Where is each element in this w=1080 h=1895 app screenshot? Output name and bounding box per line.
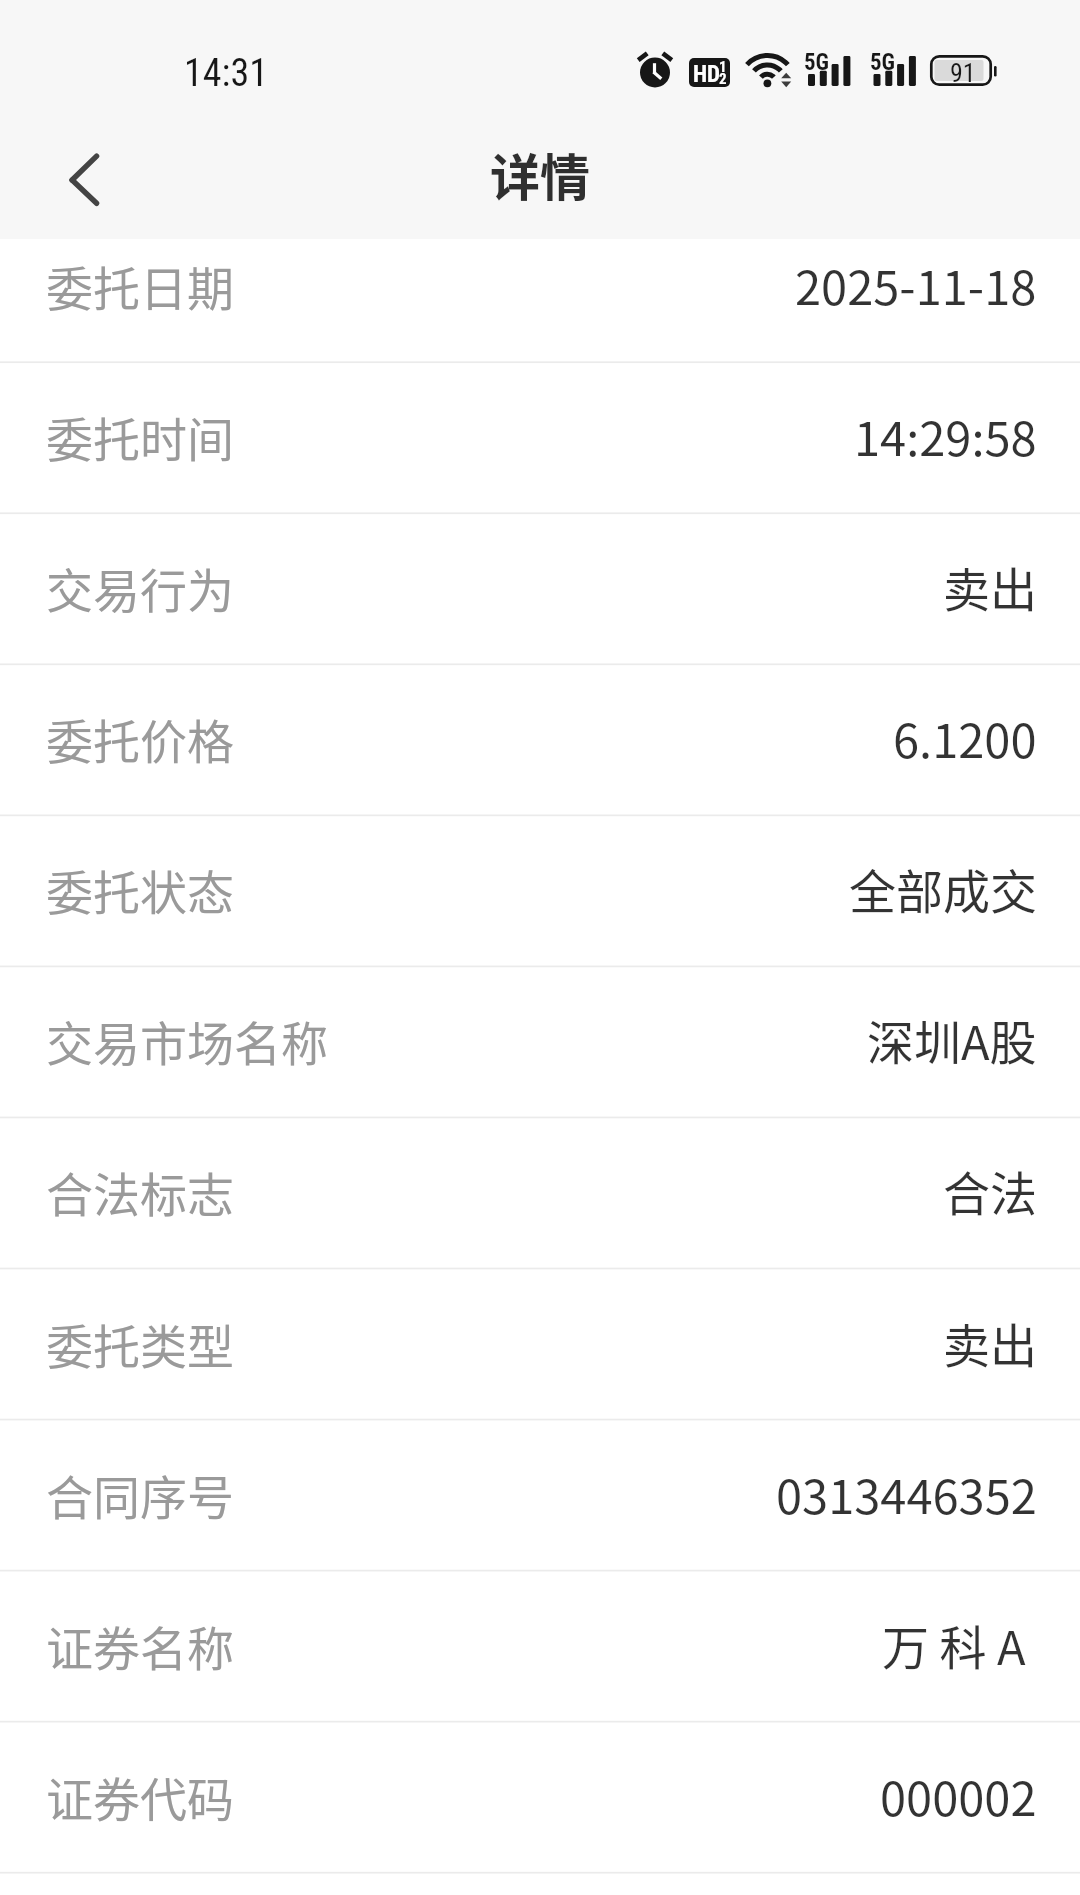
staticText: 6.1200 — [893, 703, 1037, 771]
staticText: 交易行为 — [46, 553, 234, 621]
staticText: 卖出 — [943, 1308, 1037, 1376]
staticText: 深圳A股 — [867, 1005, 1037, 1073]
staticText: 委托价格 — [46, 704, 234, 772]
staticText: 合法 — [943, 1156, 1037, 1224]
button[interactable]: 交易市场名称 — [0, 966, 1080, 1117]
staticText: 合同序号 — [46, 1460, 234, 1528]
staticText: 委托日期 — [46, 251, 234, 319]
staticText: 91 — [950, 58, 976, 88]
staticText: 2025-11-18 — [795, 250, 1037, 318]
staticText: 合法标志 — [46, 1157, 234, 1225]
staticText: 证券名称 — [46, 1611, 234, 1679]
button[interactable]: 交易行为 — [0, 513, 1080, 664]
staticText: 5G — [804, 49, 830, 76]
staticText: HD — [693, 61, 721, 88]
staticText: 万 科 A — [882, 1610, 1037, 1678]
button[interactable]: 委托时间 — [0, 362, 1080, 513]
button[interactable]: 委托日期 — [0, 211, 1080, 362]
staticText: 1 — [719, 58, 727, 76]
staticText: 2 — [719, 70, 727, 88]
staticText: 5G — [870, 49, 896, 76]
button[interactable]: 委托价格 — [0, 664, 1080, 815]
staticText: 详情 — [490, 138, 590, 210]
button[interactable]: 合法标志 — [0, 1117, 1080, 1268]
staticText: 委托状态 — [46, 855, 234, 923]
staticText: 卖出 — [943, 552, 1037, 620]
button[interactable]: Back — [24, 121, 144, 239]
staticText: 委托时间 — [46, 402, 234, 470]
staticText: 全部成交 — [849, 854, 1037, 922]
staticText: 证券代码 — [46, 1762, 234, 1830]
staticText: 交易市场名称 — [46, 1006, 328, 1074]
staticText: 委托类型 — [46, 1309, 234, 1377]
button[interactable]: 证券代码 — [0, 1722, 1080, 1873]
staticText: 14:31 — [184, 51, 268, 96]
button[interactable]: 委托类型 — [0, 1269, 1080, 1420]
button[interactable]: 证券名称 — [0, 1571, 1080, 1722]
staticText: 0313446352 — [776, 1459, 1037, 1527]
button[interactable]: 合同序号 — [0, 1420, 1080, 1571]
button[interactable]: 委托状态 — [0, 815, 1080, 966]
staticText: 000002 — [880, 1761, 1037, 1829]
staticText: 14:29:58 — [854, 401, 1037, 469]
